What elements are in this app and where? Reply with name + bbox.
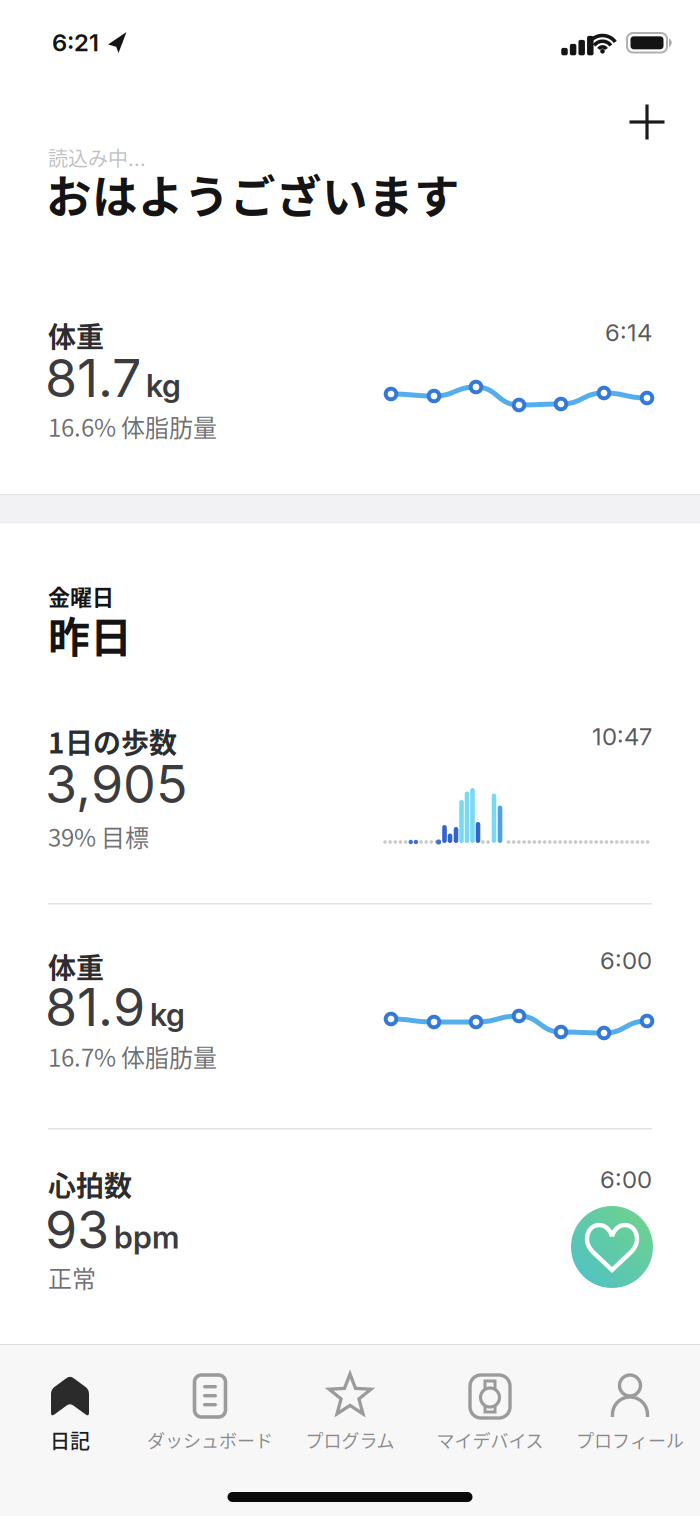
staticText: プログラム — [305, 1427, 394, 1453]
button[interactable]: プロフィール — [560, 1365, 700, 1461]
button[interactable]: 追加 — [617, 92, 677, 152]
staticText: 6:14 — [605, 318, 652, 347]
staticText: 39% 目標 — [48, 819, 149, 854]
staticText: 81.9 — [45, 975, 145, 1038]
staticText: 93 — [45, 1198, 109, 1261]
staticText: マイデバイス — [436, 1427, 543, 1453]
staticText: kg — [146, 367, 181, 404]
staticText: 16.6% 体脂肪量 — [48, 409, 217, 444]
staticText: kg — [150, 996, 185, 1033]
staticText: 昨日 — [48, 604, 132, 665]
staticText: 81.7 — [45, 346, 141, 409]
staticText: 心拍数 — [48, 1164, 132, 1204]
staticText: bpm — [114, 1218, 179, 1256]
button[interactable]: 体重 — [0, 304, 700, 494]
staticText: 正常 — [48, 1260, 96, 1295]
staticText: ダッシュボード — [147, 1427, 273, 1453]
button[interactable]: 体重 — [0, 934, 700, 1126]
button[interactable]: プログラム — [280, 1365, 420, 1461]
staticText: 16.7% 体脂肪量 — [48, 1039, 217, 1074]
staticText: プロフィール — [576, 1427, 684, 1453]
button[interactable]: 1日の歩数 — [0, 708, 700, 904]
staticText: 6:00 — [600, 946, 652, 975]
staticText: 金曜日 — [48, 580, 114, 612]
staticText: 体重 — [48, 315, 104, 355]
staticText: 6:21 — [52, 28, 99, 57]
staticText: 体重 — [48, 946, 104, 986]
staticText: 日記 — [50, 1425, 90, 1454]
button[interactable]: 心拍数 — [0, 1158, 700, 1344]
button[interactable]: マイデバイス — [420, 1365, 560, 1461]
staticText: 1日の歩数 — [48, 721, 177, 761]
button[interactable]: 日記 — [0, 1365, 140, 1461]
button[interactable]: ダッシュボード — [140, 1365, 280, 1461]
staticText: おはようございます — [46, 161, 460, 227]
staticText: 3,905 — [45, 752, 188, 815]
staticText: 10:47 — [592, 722, 652, 751]
staticText: 読込み中... — [48, 143, 146, 172]
staticText: 6:00 — [600, 1165, 652, 1194]
